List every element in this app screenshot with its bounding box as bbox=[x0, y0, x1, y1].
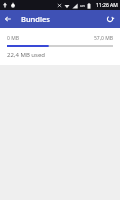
staticText: Bundles bbox=[21, 14, 50, 24]
staticText: 22,4 MB used bbox=[7, 51, 46, 59]
staticText: 0 MB bbox=[7, 35, 19, 42]
button[interactable]: Refresh bbox=[103, 12, 117, 26]
staticText: 57,0 MB bbox=[93, 35, 113, 42]
staticText: 11:26 AM bbox=[96, 2, 118, 9]
button[interactable]: 0 MB bbox=[0, 28, 120, 65]
staticText: un bbox=[80, 3, 85, 8]
button[interactable]: Back bbox=[0, 11, 16, 27]
